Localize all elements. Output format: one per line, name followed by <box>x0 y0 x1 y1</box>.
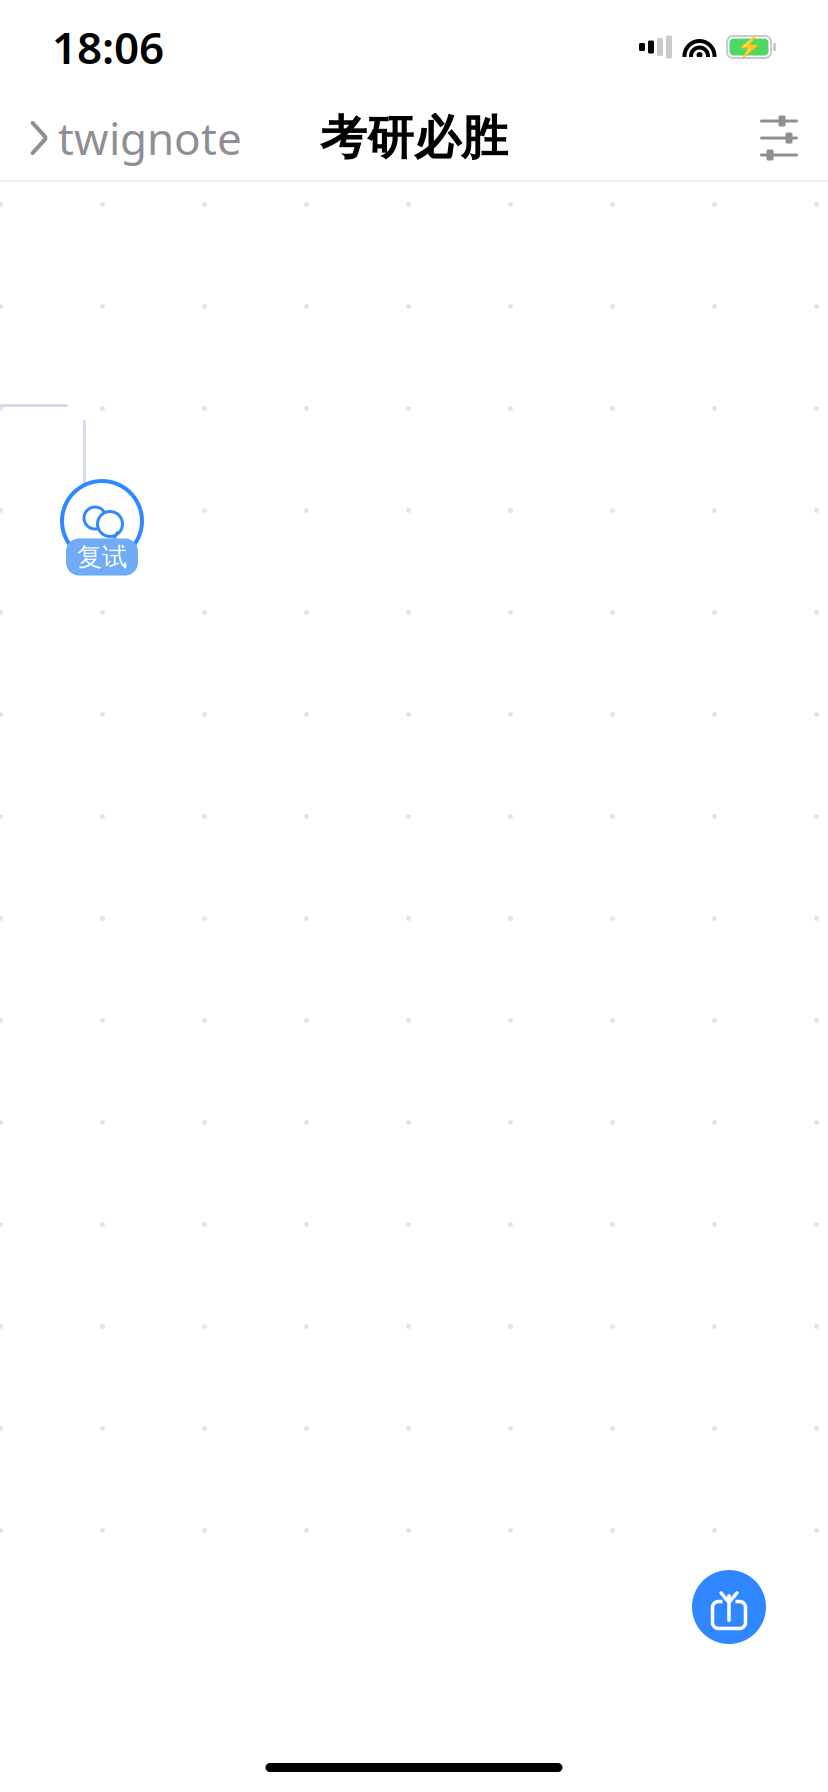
staticText: 18:06 <box>52 18 164 76</box>
staticText: 考研必胜 <box>320 109 508 167</box>
button[interactable]: Share <box>692 1570 766 1644</box>
button[interactable]: 复试 node <box>50 469 154 573</box>
staticText: ⚡ <box>735 35 762 59</box>
staticText: 复试 <box>77 541 127 572</box>
staticText: twignote <box>58 109 242 167</box>
button[interactable]: Settings <box>736 100 822 176</box>
button[interactable]: twignote <box>6 100 266 176</box>
